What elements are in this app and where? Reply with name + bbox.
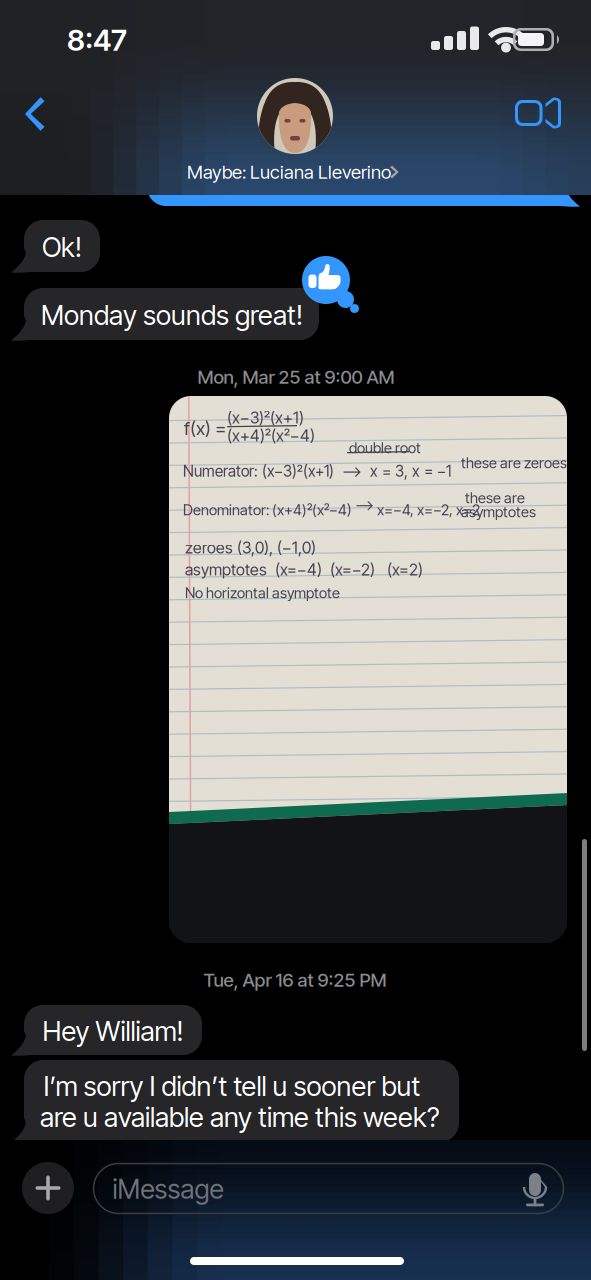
- staticText: iMessage: [112, 1173, 223, 1205]
- staticText: (x−3)²(x+1): [227, 408, 304, 427]
- staticText: these are zeroes: [461, 454, 567, 472]
- staticText: Monday sounds great!: [41, 298, 303, 331]
- button[interactable]: Photo attachment: [0, 0, 591, 1280]
- button[interactable]: FaceTime: [0, 0, 591, 1280]
- staticText: are u available any time this week?: [40, 1100, 440, 1133]
- staticText: No horizontal asymptote: [185, 584, 340, 602]
- staticText: Numerator: (x−3)²(x+1) ⟶ x = 3, x = −1: [183, 462, 451, 481]
- button[interactable]: Back: [0, 0, 591, 1280]
- staticText: asymptotes: [461, 503, 536, 521]
- button[interactable]: iMessage: [0, 0, 591, 1280]
- staticText: Ok!: [42, 230, 82, 263]
- staticText: I’m sorry I didn’t tell u sooner but: [43, 1069, 420, 1102]
- staticText: Mon, Mar 25 at 9:00 AM: [197, 366, 394, 388]
- staticText: (3,0), (−1,0): [237, 538, 316, 557]
- button[interactable]: Hey William!: [0, 0, 591, 1280]
- staticText: Denominator: (x+4)²(x²−4) ⟶ x=−4, x=−2, …: [183, 501, 480, 519]
- button[interactable]: Monday sounds great!: [0, 0, 591, 1280]
- staticText: asymptotes (x=−4) (x=−2) (x=2): [185, 560, 423, 579]
- staticText: (x+4)²(x²−4): [227, 426, 315, 445]
- staticText: Hey William!: [42, 1014, 183, 1047]
- staticText: Tue, Apr 16 at 9:25 PM: [203, 969, 386, 991]
- button[interactable]: I’m sorry I didn’t tell u sooner but: [0, 0, 591, 1280]
- button[interactable]: Add attachment: [0, 0, 591, 1280]
- button[interactable]: Maybe: Luciana Lleverino: [0, 0, 591, 1280]
- staticText: zeroes: [185, 538, 233, 557]
- staticText: Maybe: Luciana Lleverino: [187, 161, 391, 183]
- staticText: double root: [349, 439, 421, 457]
- staticText: 8:47: [67, 22, 127, 58]
- staticText: f(x) =: [184, 417, 226, 440]
- button[interactable]: Ok!: [0, 0, 591, 1280]
- staticText: these are: [465, 489, 525, 507]
- button[interactable]: [0, 0, 591, 1280]
